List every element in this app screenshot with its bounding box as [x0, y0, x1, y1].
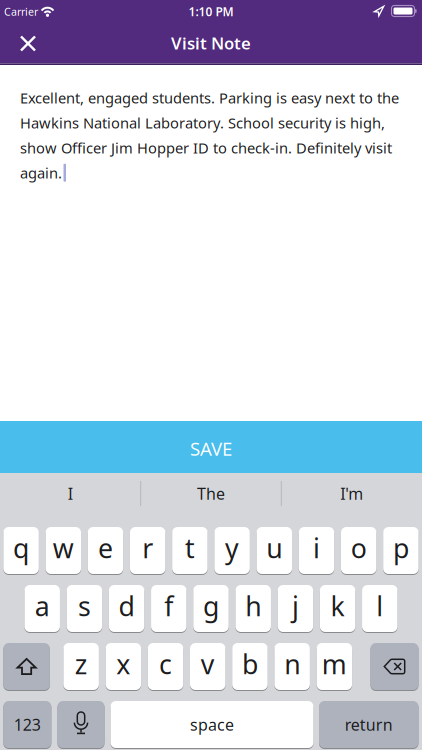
staticText: k — [331, 588, 345, 624]
button[interactable]: g — [193, 584, 229, 632]
staticText: 123 — [14, 714, 41, 735]
staticText: y — [225, 530, 239, 566]
staticText: o — [351, 530, 367, 566]
button[interactable]: n — [274, 642, 310, 690]
staticText: b — [242, 646, 258, 682]
button[interactable]: u — [257, 526, 292, 574]
button[interactable] — [57, 700, 104, 748]
button[interactable]: d — [109, 584, 144, 632]
staticText: u — [266, 530, 282, 566]
button[interactable]: a — [24, 584, 60, 632]
staticText: again. — [20, 163, 62, 182]
button[interactable]: w — [46, 526, 81, 574]
staticText: r — [142, 530, 153, 566]
button[interactable]: The — [142, 470, 280, 516]
button[interactable]: s — [67, 584, 102, 632]
button[interactable]: y — [214, 526, 250, 574]
button[interactable]: b — [232, 642, 268, 690]
staticText: Excellent, engaged students. Parking is … — [20, 88, 399, 107]
button[interactable] — [6, 23, 50, 63]
button[interactable] — [3, 642, 50, 690]
button[interactable]: return — [319, 700, 418, 748]
staticText: space — [190, 714, 234, 735]
button[interactable]: v — [190, 642, 225, 690]
staticText: I'm — [340, 483, 363, 504]
staticText: d — [119, 588, 135, 624]
staticText: m — [322, 646, 347, 682]
staticText: Hawkins National Laboratory. School secu… — [20, 113, 385, 132]
staticText: s — [78, 588, 91, 624]
staticText: Visit Note — [171, 32, 251, 54]
staticText: I — [68, 483, 73, 504]
button[interactable]: l — [362, 584, 398, 632]
button[interactable]: t — [172, 526, 208, 574]
button[interactable]: o — [341, 526, 376, 574]
staticText: v — [201, 646, 215, 682]
button[interactable]: 123 — [3, 700, 51, 748]
button[interactable]: e — [88, 526, 123, 574]
staticText: return — [345, 714, 393, 735]
button[interactable]: f — [151, 584, 187, 632]
button[interactable]: r — [130, 526, 165, 574]
button[interactable]: I — [1, 470, 139, 516]
staticText: w — [53, 530, 74, 566]
staticText: j — [292, 588, 299, 624]
button[interactable] — [370, 642, 418, 690]
button[interactable]: I'm — [283, 470, 421, 516]
button[interactable]: c — [148, 642, 183, 690]
button[interactable]: p — [383, 526, 419, 574]
button[interactable]: k — [320, 584, 355, 632]
staticText: SAVE — [190, 436, 232, 461]
staticText: e — [98, 530, 113, 566]
button[interactable]: q — [3, 526, 39, 574]
staticText: n — [284, 646, 300, 682]
staticText: h — [245, 588, 261, 624]
button[interactable]: space — [110, 700, 313, 748]
staticText: q — [13, 530, 29, 566]
staticText: The — [197, 483, 225, 504]
button[interactable]: SAVE — [0, 421, 422, 473]
staticText: p — [393, 530, 409, 566]
staticText: t — [185, 530, 195, 566]
button[interactable]: m — [317, 642, 352, 690]
staticText: c — [159, 646, 172, 682]
staticText: Carrier — [4, 4, 38, 19]
button[interactable]: x — [106, 642, 141, 690]
button[interactable]: h — [235, 584, 271, 632]
staticText: show Officer Jim Hopper ID to check-in. … — [20, 138, 392, 157]
button[interactable]: z — [63, 642, 99, 690]
staticText: l — [376, 588, 383, 624]
staticText: g — [203, 588, 219, 624]
staticText: a — [35, 588, 50, 624]
staticText: 1:10 PM — [188, 3, 233, 19]
staticText: x — [116, 646, 130, 682]
staticText: i — [313, 530, 320, 566]
button[interactable]: i — [299, 526, 334, 574]
button[interactable]: j — [278, 584, 313, 632]
staticText: z — [75, 646, 88, 682]
staticText: f — [164, 588, 173, 624]
